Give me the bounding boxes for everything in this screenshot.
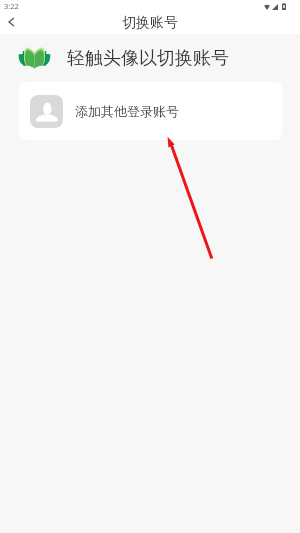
staticText: 切换账号 bbox=[122, 14, 178, 32]
staticText: 3:22 bbox=[4, 1, 19, 11]
button[interactable]: Back bbox=[0, 10, 23, 34]
button[interactable]: 添加其他登录账号 bbox=[19, 82, 282, 140]
staticText: 轻触头像以切换账号 bbox=[67, 47, 229, 70]
staticText: 添加其他登录账号 bbox=[75, 103, 179, 119]
